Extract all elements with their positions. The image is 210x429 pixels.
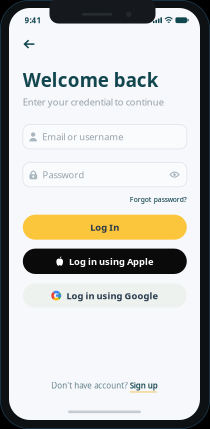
staticText: Enter your credential to continue — [23, 96, 164, 108]
staticText: Sign up — [130, 380, 158, 391]
staticText: Password — [43, 168, 85, 181]
button[interactable]: Forgot password? — [23, 194, 187, 205]
button[interactable]: Don't have account? — [9, 379, 200, 392]
staticText: Log in using Google — [66, 289, 158, 302]
staticText: Log In — [90, 221, 119, 233]
staticText: Welcome back — [23, 67, 159, 92]
button[interactable]: Back — [17, 34, 41, 54]
staticText: 9:41 — [24, 15, 41, 25]
button[interactable]: Log in using Google — [23, 284, 187, 308]
button[interactable]: Log In — [23, 215, 187, 240]
button[interactable]: Log in using Apple — [23, 249, 187, 274]
staticText: Don't have account? — [51, 380, 127, 391]
staticText: Email or username — [42, 130, 123, 143]
staticText: Forgot password? — [130, 195, 187, 204]
staticText: Log in using Apple — [69, 255, 154, 267]
